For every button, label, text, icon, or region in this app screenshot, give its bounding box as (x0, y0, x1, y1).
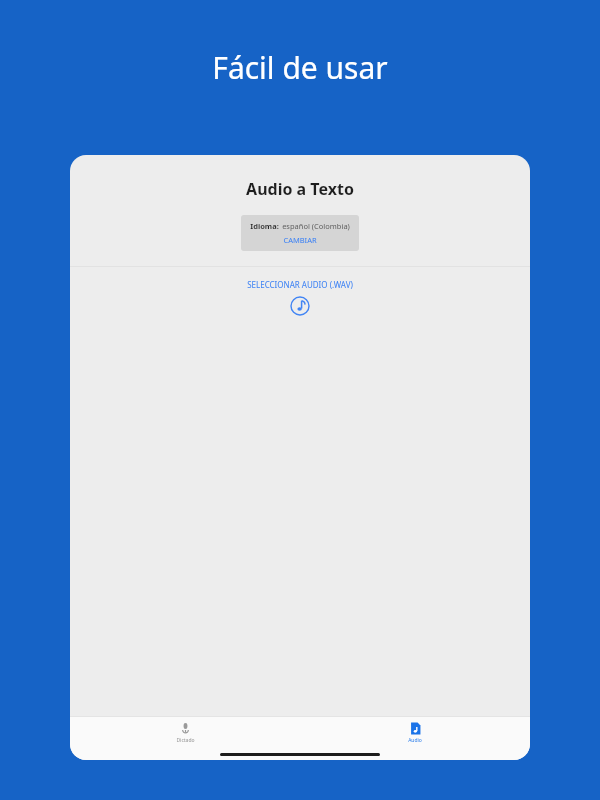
button[interactable]: Dictado (70, 717, 300, 749)
staticText: Audio a Texto (246, 178, 354, 200)
button[interactable]: SELECCIONAR AUDIO (.WAV) (70, 279, 530, 316)
other: Audio (409, 722, 422, 735)
other: Dictado (179, 722, 192, 735)
staticText: Fácil de usar (212, 47, 388, 88)
staticText: Dictado (176, 737, 195, 744)
staticText: CAMBIAR (283, 235, 317, 245)
staticText: Idioma: (250, 221, 279, 231)
button[interactable]: Idioma: (241, 215, 359, 251)
staticText: Audio (408, 737, 422, 744)
button[interactable]: Audio (300, 717, 530, 749)
staticText: español (Colombia) (282, 221, 350, 231)
staticText: SELECCIONAR AUDIO (.WAV) (247, 279, 353, 290)
